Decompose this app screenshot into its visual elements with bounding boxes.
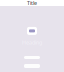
staticText: Title (27, 0, 37, 7)
